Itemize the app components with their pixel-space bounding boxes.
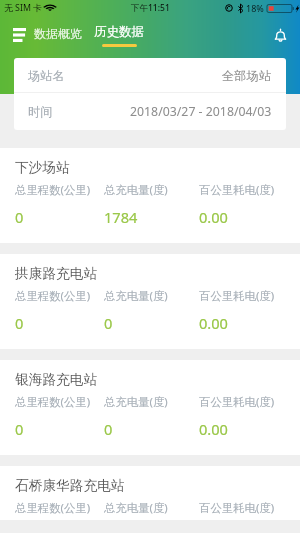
staticText: 2018/03/27 - 2018/04/03 bbox=[130, 103, 272, 120]
button[interactable]: 数据概览 bbox=[32, 16, 84, 54]
staticText: 1784 bbox=[104, 207, 138, 227]
staticText: 下午11:51 bbox=[131, 2, 170, 14]
staticText: 场站名 bbox=[28, 68, 65, 83]
staticText: 全部场站 bbox=[222, 68, 272, 83]
staticText: 0 bbox=[104, 313, 113, 333]
button[interactable]: 历史数据 bbox=[92, 16, 146, 54]
button[interactable]: 银海路充电站 bbox=[0, 360, 300, 455]
button[interactable]: 下沙场站 bbox=[0, 148, 300, 243]
staticText: 银海路充电站 bbox=[15, 371, 98, 388]
staticText: 0 bbox=[15, 313, 24, 333]
staticText: 石桥康华路充电站 bbox=[15, 477, 125, 494]
staticText: 百公里耗电(度) bbox=[199, 288, 275, 304]
staticText: 数据概览 bbox=[34, 26, 82, 41]
button[interactable]: 石桥康华路充电站 bbox=[0, 466, 300, 520]
staticText: 无 SIM 卡 bbox=[4, 2, 42, 14]
staticText: 0.00 bbox=[199, 313, 228, 333]
staticText: 总里程数(公里) bbox=[15, 394, 91, 410]
staticText: 0 bbox=[15, 419, 24, 439]
button[interactable]: 场站名 bbox=[14, 58, 286, 92]
staticText: 总里程数(公里) bbox=[15, 500, 91, 516]
staticText: 总充电量(度) bbox=[104, 394, 168, 410]
staticText: 百公里耗电(度) bbox=[199, 500, 275, 516]
staticText: 0.00 bbox=[199, 207, 228, 227]
staticText: 总充电量(度) bbox=[104, 288, 168, 304]
staticText: 拱康路充电站 bbox=[15, 265, 98, 282]
staticText: 百公里耗电(度) bbox=[199, 182, 275, 198]
staticText: 总充电量(度) bbox=[104, 182, 168, 198]
staticText: 18% bbox=[246, 2, 264, 14]
button[interactable]: 拱康路充电站 bbox=[0, 254, 300, 349]
button[interactable]: Menu bbox=[5, 16, 33, 54]
staticText: 0 bbox=[15, 207, 24, 227]
staticText: 总里程数(公里) bbox=[15, 182, 91, 198]
staticText: 百公里耗电(度) bbox=[199, 394, 275, 410]
staticText: 下沙场站 bbox=[15, 159, 70, 176]
staticText: 总里程数(公里) bbox=[15, 288, 91, 304]
button[interactable]: 时间 bbox=[14, 93, 286, 130]
staticText: 0 bbox=[104, 419, 113, 439]
staticText: 0.00 bbox=[199, 419, 228, 439]
staticText: 时间 bbox=[28, 104, 53, 119]
staticText: 历史数据 bbox=[94, 24, 144, 40]
staticText: 总充电量(度) bbox=[104, 500, 168, 516]
button[interactable]: Notifications bbox=[268, 23, 292, 47]
